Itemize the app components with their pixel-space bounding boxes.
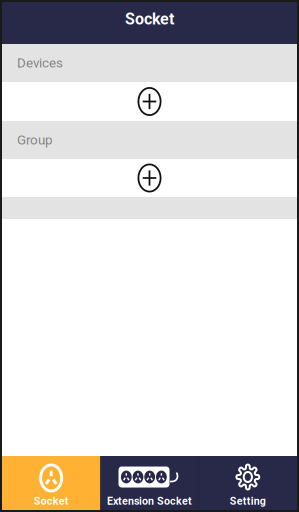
staticText: Setting — [230, 495, 266, 507]
button[interactable]: Setting — [199, 456, 297, 510]
staticText: Extension Socket — [107, 495, 192, 507]
button[interactable]: Add — [2, 82, 297, 121]
button[interactable]: Extension Socket — [100, 456, 199, 510]
button[interactable]: Add — [2, 159, 297, 197]
staticText: Socket — [125, 10, 174, 28]
staticText: Group — [17, 132, 52, 148]
staticText: Socket — [34, 495, 69, 507]
staticText: Devices — [17, 55, 63, 71]
button[interactable]: Socket — [2, 456, 100, 510]
